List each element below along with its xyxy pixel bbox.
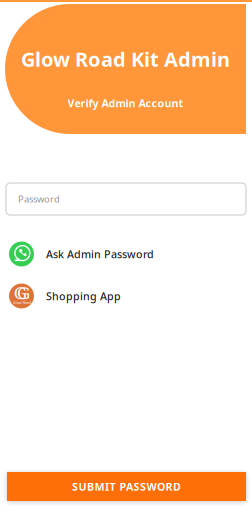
staticText: Glow Road	[12, 300, 30, 305]
button[interactable]: Password	[6, 183, 246, 215]
button[interactable]: G	[0, 275, 252, 317]
staticText: Verify Admin Account	[67, 96, 183, 110]
button[interactable]: Ask Admin Password	[0, 233, 252, 275]
staticText: Ask Admin Password	[46, 247, 154, 261]
button[interactable]: SUBMIT PASSWORD	[7, 472, 246, 501]
staticText: Glow Road Kit Admin	[21, 46, 230, 72]
staticText: G	[14, 284, 27, 303]
staticText: Shopping App	[46, 289, 121, 303]
staticText: SUBMIT PASSWORD	[72, 479, 181, 494]
staticText: G	[17, 284, 30, 303]
staticText: Password	[18, 193, 60, 205]
